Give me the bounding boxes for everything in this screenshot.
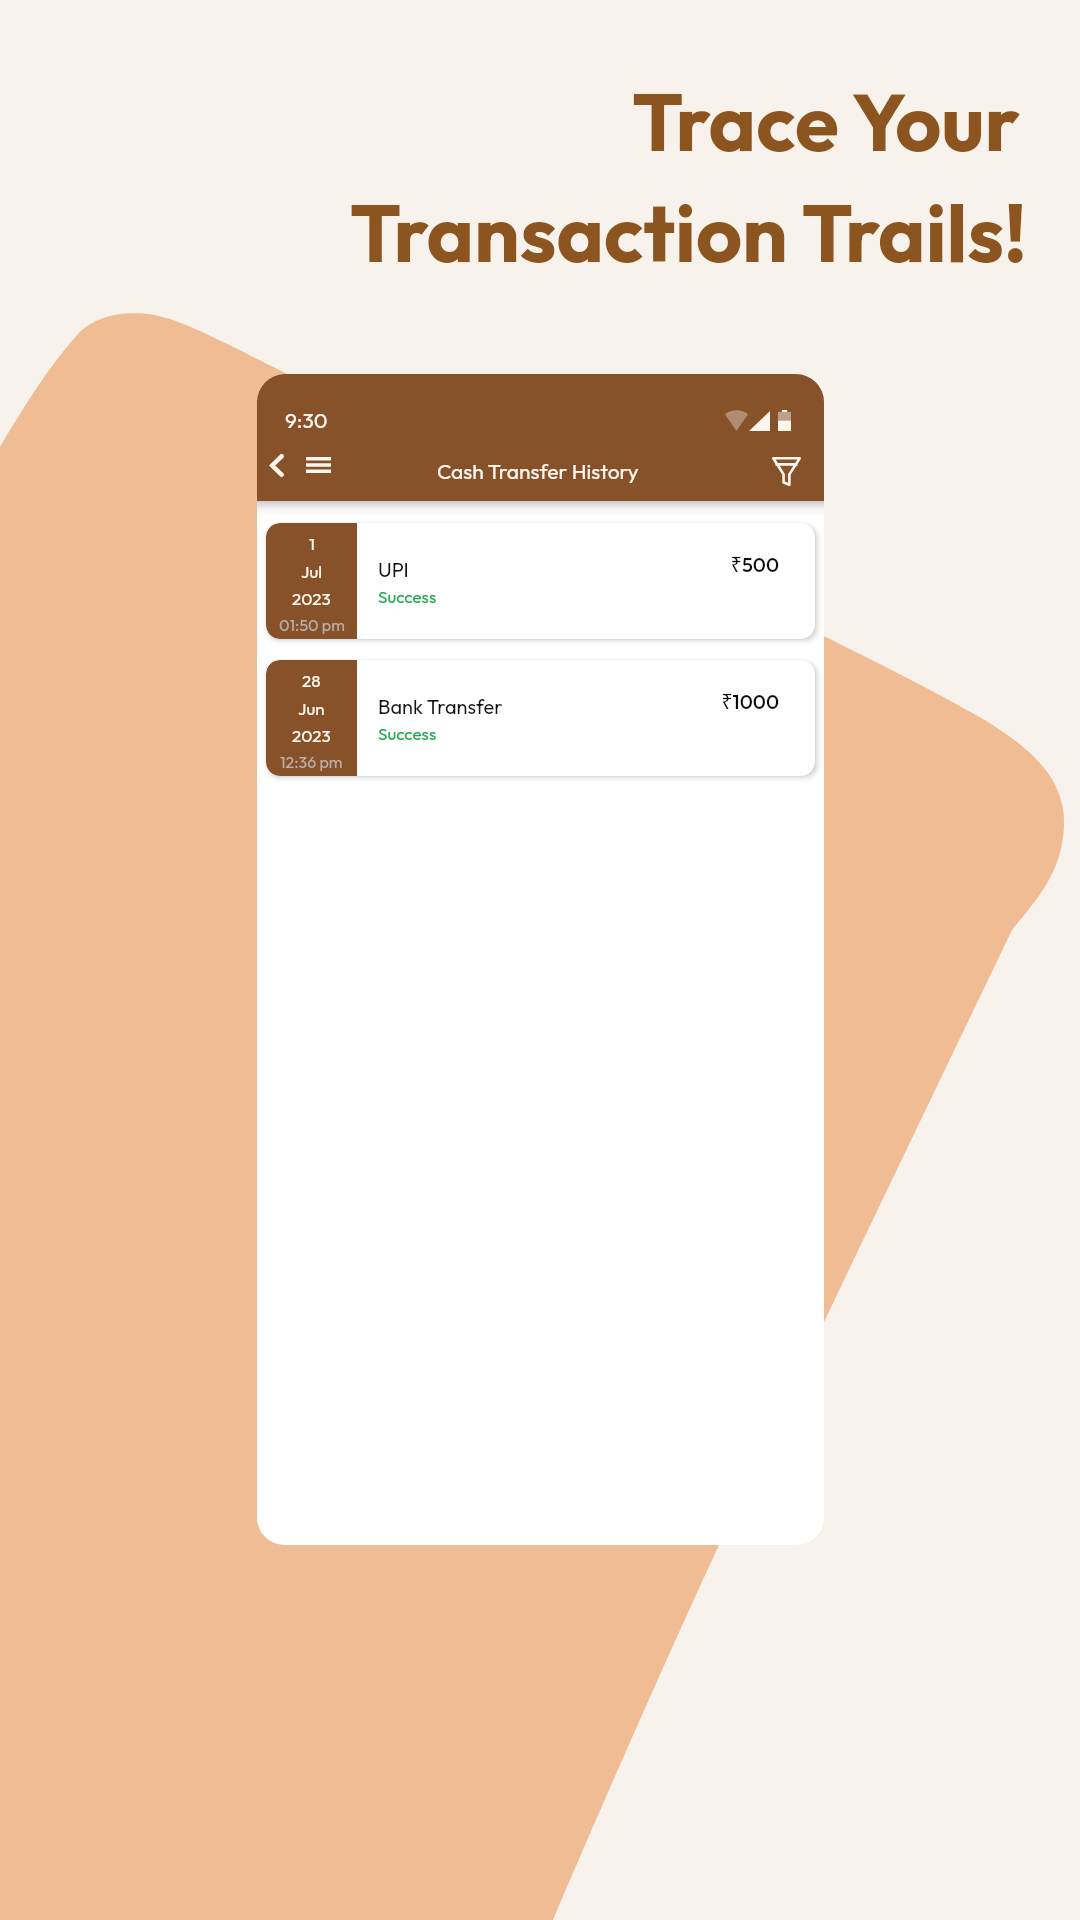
button[interactable]: 28 <box>266 660 815 776</box>
button[interactable]: Filter <box>761 446 811 496</box>
staticText: Success <box>378 723 437 744</box>
staticText: 2023 <box>292 725 331 746</box>
staticText: Jul <box>301 561 322 582</box>
staticText: UPI <box>378 557 409 582</box>
staticText: 1 <box>309 533 315 554</box>
staticText: 2023 <box>292 588 331 609</box>
button[interactable]: 1 <box>266 523 815 639</box>
staticText: Bank Transfer <box>378 694 503 719</box>
staticText: Transaction Trails! <box>350 182 1027 283</box>
staticText: Cash Transfer History <box>437 458 639 484</box>
staticText: ₹500 <box>357 551 779 578</box>
staticText: Success <box>378 586 437 607</box>
staticText: Jun <box>298 698 325 719</box>
staticText: 12:36 pm <box>280 752 343 772</box>
button[interactable]: Open navigation menu <box>298 445 338 485</box>
staticText: 01:50 pm <box>279 615 345 635</box>
button[interactable]: Back <box>260 448 294 482</box>
staticText: 28 <box>302 670 321 691</box>
staticText: Trace Your <box>632 71 1020 172</box>
staticText: ₹1000 <box>357 688 779 715</box>
staticText: 9:30 <box>285 407 328 433</box>
